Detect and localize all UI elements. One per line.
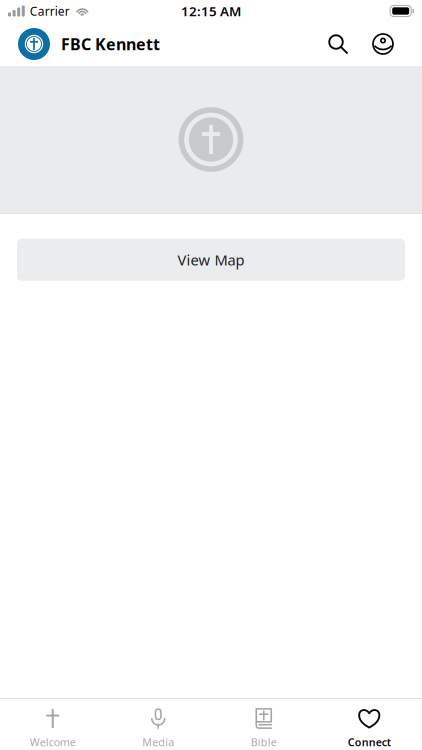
- button[interactable]: Connect: [316, 699, 422, 750]
- staticText: Connect: [348, 735, 391, 749]
- staticText: FBC Kennett: [61, 33, 160, 55]
- button[interactable]: Search: [315, 22, 361, 66]
- staticText: View Map: [177, 250, 244, 269]
- button[interactable]: Media: [105, 699, 211, 750]
- staticText: Carrier: [30, 3, 70, 19]
- button[interactable]: Bible: [211, 699, 316, 750]
- staticText: Bible: [251, 735, 277, 749]
- staticText: Media: [142, 735, 174, 749]
- button[interactable]: Welcome: [0, 699, 105, 750]
- staticText: 12:15 AM: [181, 2, 241, 20]
- staticText: Welcome: [30, 735, 76, 749]
- button[interactable]: View Map: [17, 239, 405, 281]
- button[interactable]: Account: [361, 22, 405, 66]
